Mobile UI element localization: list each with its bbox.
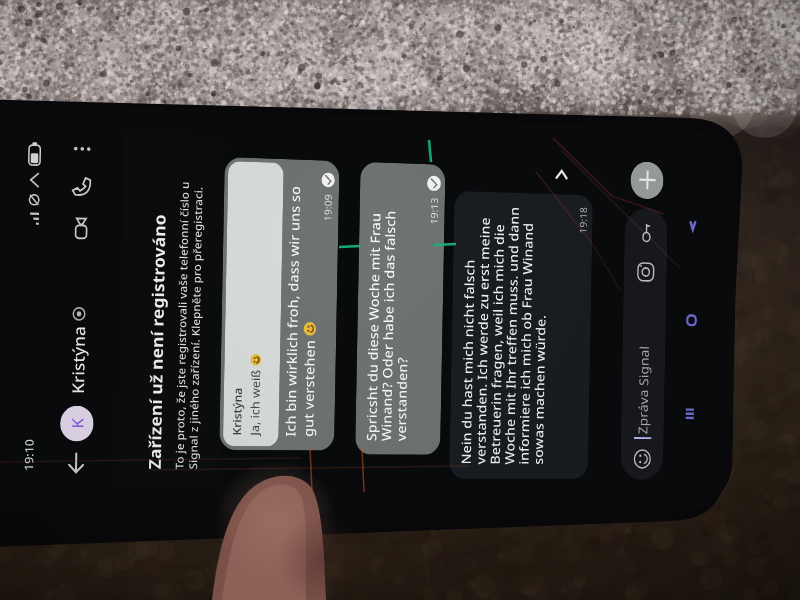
button[interactable]: Scroll to bottom — [547, 158, 576, 191]
staticText: Zařízení už není registrováno — [143, 213, 171, 469]
staticText: Kristýna — [229, 387, 245, 435]
staticText: Ja, ich weiß — [246, 369, 264, 436]
button[interactable]: More options — [65, 130, 99, 167]
button[interactable]: Recent apps — [670, 393, 708, 436]
button[interactable]: Back — [55, 441, 97, 485]
button[interactable]: Contact photo — [60, 406, 94, 441]
staticText: Spricsht du diese Woche mit Frau Winand?… — [362, 209, 414, 441]
staticText: 19:13 — [427, 197, 441, 225]
staticText: Kristýna — [66, 325, 90, 394]
button[interactable]: Attach — [630, 161, 664, 199]
button[interactable]: Home — [672, 299, 710, 342]
staticText: gut verstehen — [299, 339, 318, 437]
button[interactable]: Back — [674, 204, 712, 248]
staticText: K — [67, 418, 88, 429]
button[interactable]: Spricsht du diese Woche mit Frau Winand?… — [355, 162, 445, 455]
staticText: 19:10 — [21, 438, 37, 471]
button[interactable]: Camera — [633, 258, 658, 287]
button[interactable]: Zařízení už není registrováno — [117, 133, 225, 487]
button[interactable]: Zpráva Signal — [620, 208, 668, 480]
staticText: 19:09 — [321, 193, 334, 221]
button[interactable]: Kristýna — [219, 157, 339, 451]
button[interactable]: Nein du hast mich nicht falsch verstande… — [449, 191, 593, 479]
button[interactable]: Video call — [61, 208, 101, 250]
staticText: Zpráva Signal — [634, 346, 652, 434]
staticText: Nein du hast mich nicht falsch verstande… — [457, 204, 552, 465]
button[interactable]: Voice call — [62, 166, 101, 209]
button[interactable]: Voice message — [633, 219, 659, 248]
button[interactable]: Kristýna — [66, 249, 91, 394]
staticText: To je proto, že jste registrovali vaše t… — [172, 181, 205, 469]
staticText: Ich bin wirklich froh, dass wir uns so — [281, 185, 304, 437]
staticText: 19:18 — [576, 206, 589, 234]
